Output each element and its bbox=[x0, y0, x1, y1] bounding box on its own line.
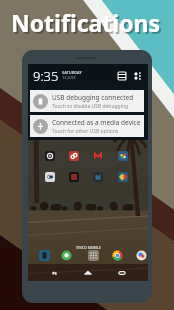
button[interactable]: App bbox=[45, 151, 55, 161]
staticText: Touch to disable USB debugging bbox=[52, 103, 129, 110]
staticText: USB debugging connected bbox=[52, 93, 134, 102]
button[interactable]: Back bbox=[48, 266, 62, 280]
staticText: Touch for other USB options bbox=[52, 128, 119, 135]
button[interactable]: App bbox=[112, 250, 123, 261]
staticText: 12 JULY bbox=[62, 75, 76, 80]
button[interactable]: App bbox=[69, 172, 79, 182]
button[interactable]: App bbox=[61, 250, 72, 261]
button[interactable]: App bbox=[93, 151, 103, 161]
button[interactable]: App bbox=[69, 151, 79, 161]
button[interactable]: App bbox=[118, 172, 128, 182]
button[interactable]: Quick settings bbox=[116, 70, 128, 82]
staticText: 9:35 bbox=[33, 67, 59, 85]
button[interactable]: USB debugging connected bbox=[30, 90, 144, 112]
staticText: Notifications bbox=[11, 7, 161, 38]
staticText: TESCO MOBILE bbox=[76, 245, 101, 250]
button[interactable]: Home bbox=[81, 266, 95, 280]
button[interactable]: App bbox=[45, 172, 55, 182]
button[interactable]: App bbox=[118, 151, 128, 161]
button[interactable]: Connected as a media device bbox=[30, 115, 144, 137]
button[interactable]: App bbox=[88, 250, 99, 261]
button[interactable]: Recents bbox=[115, 266, 129, 280]
button[interactable]: User bbox=[132, 70, 144, 82]
staticText: Notifications bbox=[13, 9, 163, 40]
button[interactable]: App bbox=[136, 250, 147, 261]
staticText: Connected as a media device bbox=[52, 118, 141, 127]
button[interactable]: App bbox=[39, 250, 50, 261]
staticText: SATURDAY bbox=[62, 70, 82, 75]
button[interactable]: App bbox=[93, 172, 103, 182]
